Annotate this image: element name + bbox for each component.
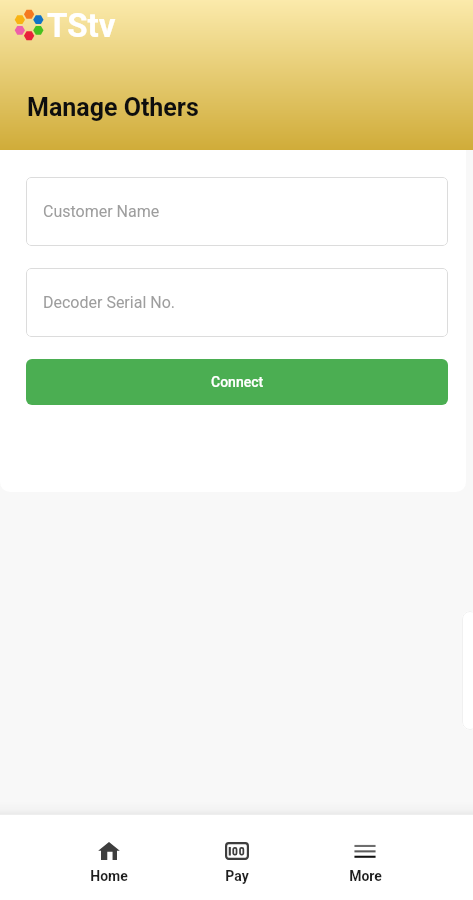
button[interactable]: Home: [45, 815, 173, 884]
staticText: Connect: [211, 374, 264, 390]
staticText: Decoder Serial No.: [43, 293, 175, 312]
button[interactable]: Customer Name: [26, 177, 448, 246]
staticText: More: [349, 868, 382, 884]
staticText: Pay: [225, 868, 249, 884]
button[interactable]: Decoder Serial No.: [26, 268, 448, 337]
staticText: Customer Name: [43, 202, 160, 221]
button[interactable]: Pay: [173, 815, 301, 884]
staticText: Manage Others: [27, 93, 199, 122]
button[interactable]: More: [301, 815, 429, 884]
staticText: TStv: [47, 6, 116, 44]
button[interactable]: Connect: [26, 359, 448, 405]
staticText: Home: [90, 868, 128, 884]
button[interactable]: TStv: [11, 6, 116, 44]
